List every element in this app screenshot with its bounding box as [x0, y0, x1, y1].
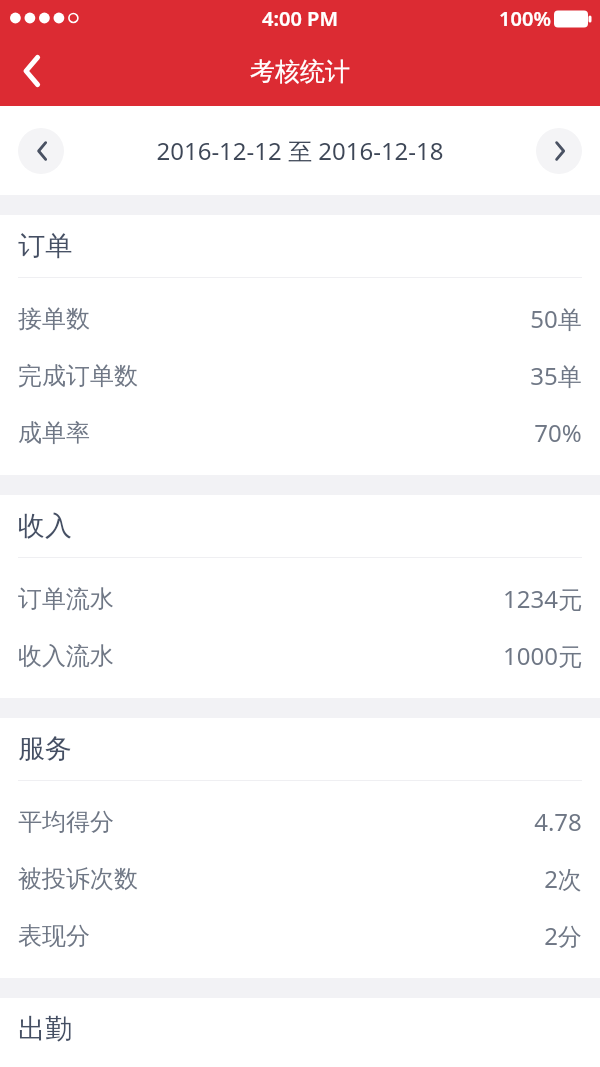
staticText: 100% [499, 5, 551, 32]
staticText: 订单 [18, 229, 72, 263]
button[interactable]: Back [0, 36, 64, 106]
button[interactable]: 接单数 [0, 290, 600, 347]
staticText: 表现分 [18, 921, 90, 951]
staticText: 1000元 [503, 639, 582, 672]
staticText: 70% [534, 416, 582, 449]
staticText: 4:00 PM [262, 5, 338, 32]
staticText: 35单 [530, 359, 582, 392]
staticText: 成单率 [18, 418, 90, 448]
button[interactable]: 被投诉次数 [0, 850, 600, 907]
button[interactable]: 订单流水 [0, 570, 600, 627]
staticText: 2016-12-12 至 2016-12-18 [156, 134, 444, 167]
staticText: 被投诉次数 [18, 864, 138, 894]
staticText: 考核统计 [250, 56, 350, 87]
staticText: 4.78 [534, 805, 582, 838]
staticText: 2次 [544, 862, 582, 895]
staticText: 完成订单数 [18, 361, 138, 391]
button[interactable]: Previous week [18, 128, 64, 174]
staticText: 订单流水 [18, 584, 114, 614]
staticText: 1234元 [503, 582, 582, 615]
staticText: 收入流水 [18, 641, 114, 671]
staticText: 收入 [18, 509, 72, 543]
staticText: 接单数 [18, 304, 90, 334]
button[interactable]: 收入流水 [0, 627, 600, 684]
button[interactable]: 平均得分 [0, 793, 600, 850]
staticText: 服务 [18, 732, 72, 766]
button[interactable]: 表现分 [0, 907, 600, 964]
staticText: 50单 [530, 302, 582, 335]
staticText: 2分 [544, 919, 582, 952]
staticText: 平均得分 [18, 807, 114, 837]
staticText: 出勤 [18, 1012, 72, 1046]
button[interactable]: 成单率 [0, 404, 600, 461]
button[interactable]: Next week [536, 128, 582, 174]
button[interactable]: 完成订单数 [0, 347, 600, 404]
